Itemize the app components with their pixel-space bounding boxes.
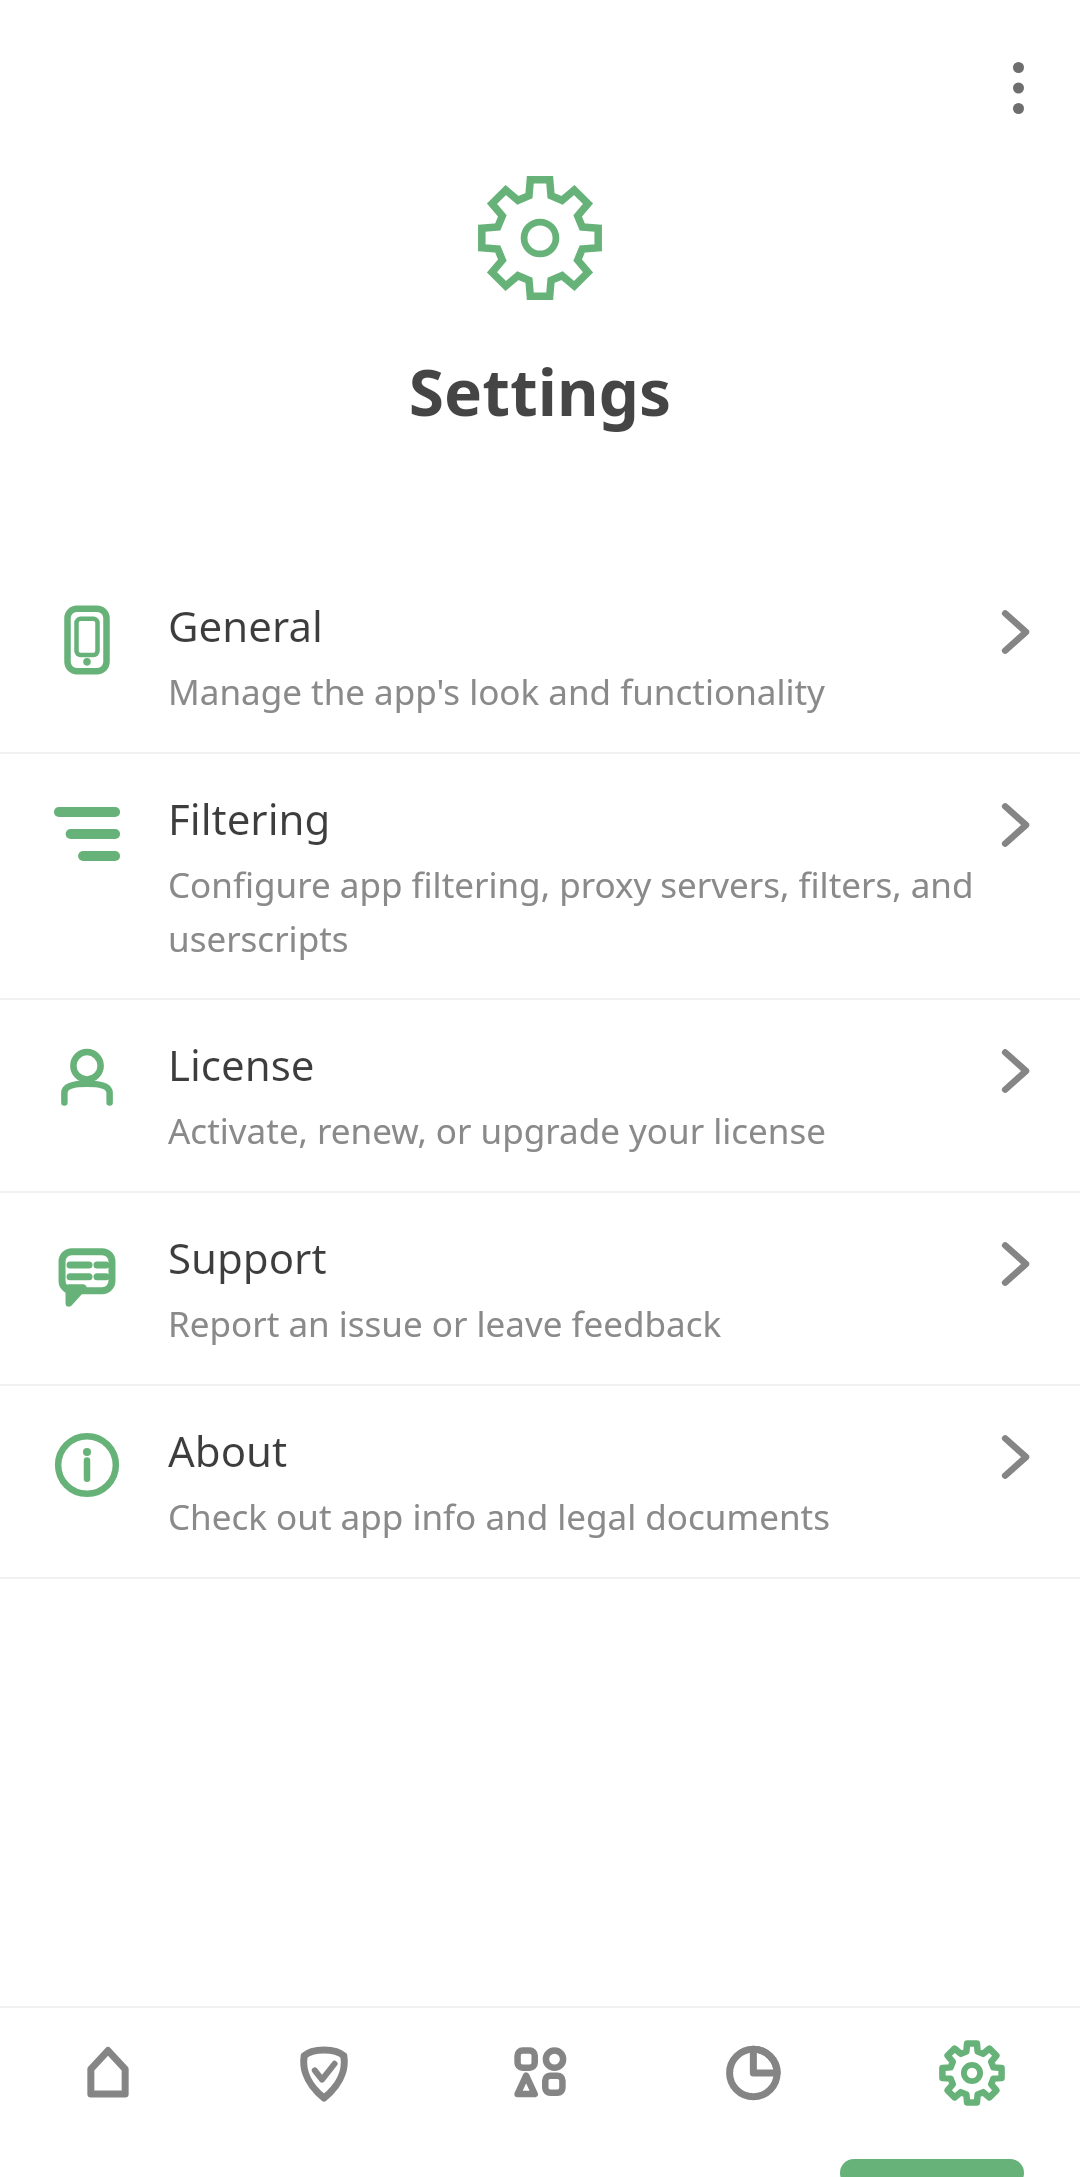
staticText: Check out app info and legal documents — [168, 1493, 830, 1541]
staticText: Settings — [0, 348, 1080, 435]
staticText: General — [168, 597, 323, 654]
staticText: Activate, renew, or upgrade your license — [168, 1107, 826, 1155]
button[interactable]: Support — [0, 1193, 1080, 1384]
button[interactable]: Home — [0, 2008, 216, 2138]
staticText: Configure app filtering, proxy servers, … — [168, 861, 976, 962]
staticText: Support — [168, 1229, 327, 1286]
staticText: About — [168, 1422, 288, 1479]
button[interactable]: About — [0, 1386, 1080, 1577]
staticText: Manage the app's look and functionality — [168, 668, 825, 716]
button[interactable]: License — [0, 1000, 1080, 1191]
button[interactable]: More options — [976, 46, 1060, 130]
button[interactable]: Filtering — [0, 754, 1080, 998]
staticText: Filtering — [168, 790, 331, 847]
button[interactable]: Statistics — [648, 2008, 864, 2138]
button[interactable]: Apps — [432, 2008, 648, 2138]
button[interactable]: General — [0, 561, 1080, 752]
staticText: License — [168, 1036, 315, 1093]
button[interactable]: Protection — [216, 2008, 432, 2138]
staticText: Report an issue or leave feedback — [168, 1300, 722, 1348]
button[interactable]: Settings — [864, 2008, 1080, 2138]
